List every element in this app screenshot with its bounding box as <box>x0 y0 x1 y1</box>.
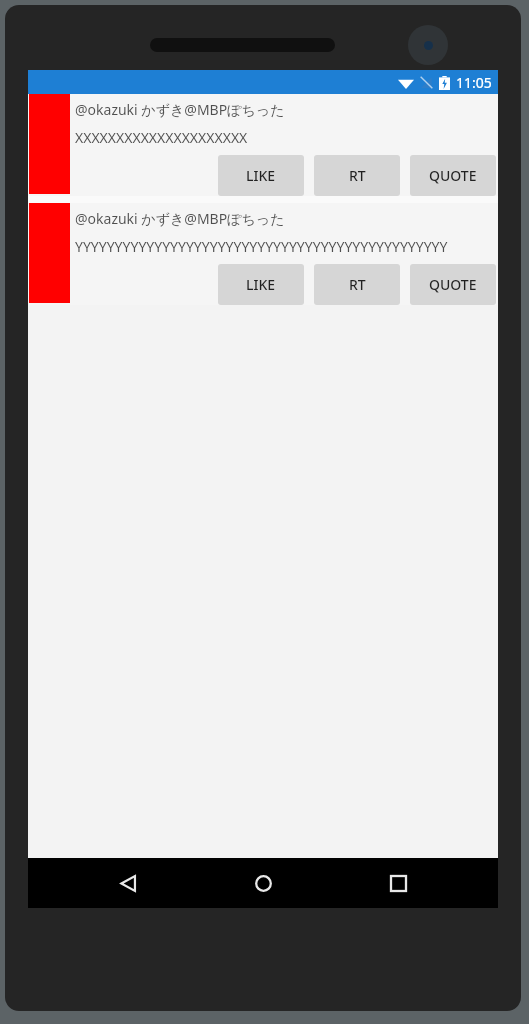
button[interactable]: LIKE <box>218 155 304 196</box>
button[interactable]: Recent apps <box>363 858 433 908</box>
staticText: 11:05 <box>456 73 492 92</box>
staticText: YYYYYYYYYYYYYYYYYYYYYYYYYYYYYYYYYYYYYYYY… <box>75 237 448 256</box>
staticText: @okazuki かずき@MBPぽちった <box>75 209 285 228</box>
staticText: LIKE <box>246 275 276 294</box>
staticText: XXXXXXXXXXXXXXXXXXXXX <box>75 128 248 147</box>
button[interactable]: @okazuki かずき@MBPぽちった <box>28 203 498 305</box>
staticText: @okazuki かずき@MBPぽちった <box>75 100 285 119</box>
button[interactable]: @okazuki かずき@MBPぽちった <box>28 94 498 196</box>
staticText: QUOTE <box>429 166 477 185</box>
staticText: LIKE <box>246 166 276 185</box>
button[interactable]: QUOTE <box>410 155 496 196</box>
button[interactable]: QUOTE <box>410 264 496 305</box>
button[interactable]: LIKE <box>218 264 304 305</box>
staticText: RT <box>349 166 366 185</box>
button[interactable]: RT <box>314 155 400 196</box>
staticText: QUOTE <box>429 275 477 294</box>
button[interactable]: Back <box>93 858 163 908</box>
button[interactable]: Home <box>228 858 298 908</box>
staticText: RT <box>349 275 366 294</box>
button[interactable]: RT <box>314 264 400 305</box>
